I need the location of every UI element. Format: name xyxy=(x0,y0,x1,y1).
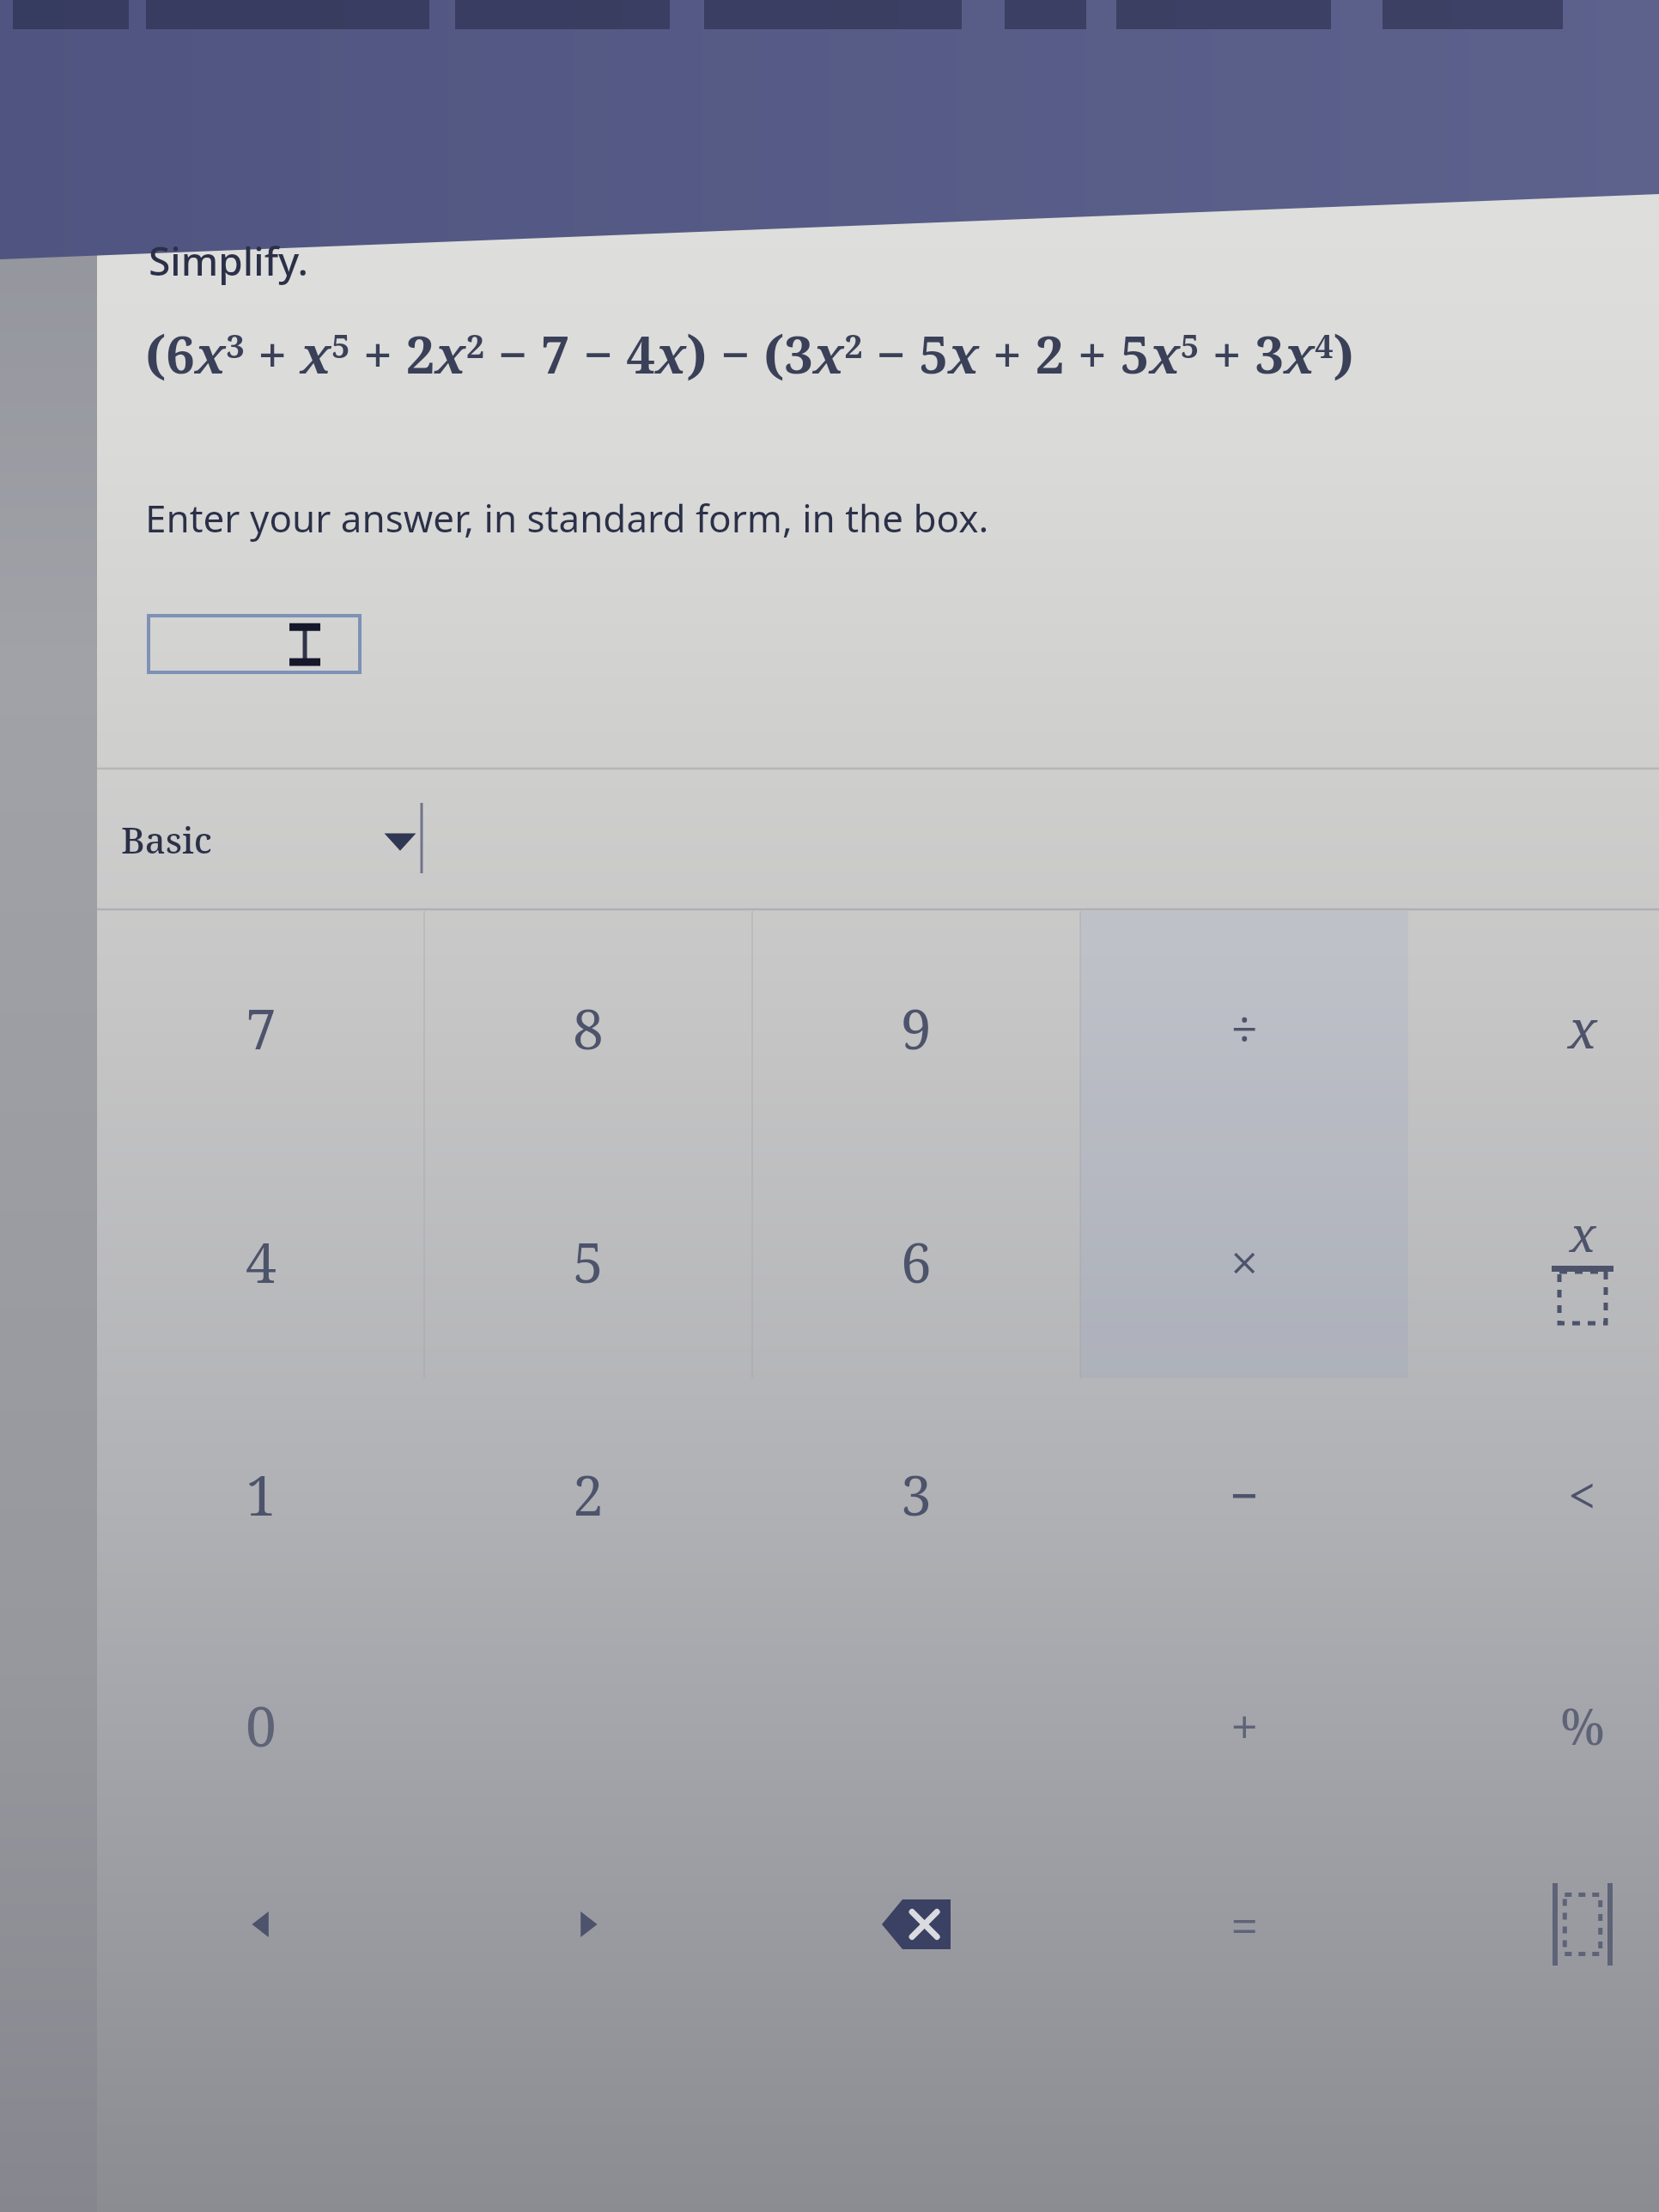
staticText: × xyxy=(1231,1228,1259,1296)
staticText: 7 xyxy=(246,991,276,1066)
button[interactable]: x xyxy=(1408,911,1659,1145)
staticText: = xyxy=(1231,1891,1259,1959)
button[interactable]: Fraction xyxy=(1408,1145,1659,1378)
staticText: (6x3 + x5 + 2x2 − 7 − 4x) − (3x2 − 5x + … xyxy=(145,319,1354,389)
button[interactable]: Move right xyxy=(424,1840,752,2008)
button[interactable]: = xyxy=(1080,1840,1408,2008)
button[interactable]: Backspace xyxy=(752,1840,1080,2008)
staticText: 9 xyxy=(901,991,932,1066)
staticText: ÷ xyxy=(1231,994,1259,1062)
staticText: Basic xyxy=(121,815,212,864)
button[interactable]: 8 xyxy=(424,911,752,1145)
button[interactable]: Basic xyxy=(97,767,1659,911)
button[interactable]: Move left xyxy=(97,1840,424,2008)
staticText: + xyxy=(1231,1692,1259,1759)
other: Choose keypad xyxy=(380,819,420,859)
button[interactable]: + xyxy=(1080,1610,1408,1840)
staticText: x xyxy=(1570,1200,1596,1266)
staticText: 5 xyxy=(573,1224,604,1299)
staticText: 1 xyxy=(246,1457,276,1532)
button[interactable]: × xyxy=(1080,1145,1408,1378)
button[interactable]: Template xyxy=(1408,1840,1659,2008)
button[interactable]: 2 xyxy=(424,1378,752,1610)
staticText: Enter your answer, in standard form, in … xyxy=(145,492,989,544)
button[interactable]: ÷ xyxy=(1080,911,1408,1145)
button[interactable]: 7 xyxy=(97,911,424,1145)
staticText: 4 xyxy=(246,1224,276,1299)
staticText: 8 xyxy=(573,991,604,1066)
staticText: 2 xyxy=(573,1457,604,1532)
staticText: Simplify. xyxy=(149,234,309,288)
staticText: < xyxy=(1568,1461,1596,1528)
button[interactable]: % xyxy=(1408,1610,1659,1840)
button[interactable]: 6 xyxy=(752,1145,1080,1378)
staticText: 3 xyxy=(901,1457,932,1532)
button[interactable]: < xyxy=(1408,1378,1659,1610)
button[interactable]: Answer input box xyxy=(149,616,360,672)
button[interactable]: 0 xyxy=(97,1610,424,1840)
button[interactable]: blank xyxy=(752,1610,1080,1840)
button[interactable]: 3 xyxy=(752,1378,1080,1610)
staticText: 6 xyxy=(901,1224,932,1299)
button[interactable]: − xyxy=(1080,1378,1408,1610)
button[interactable]: 1 xyxy=(97,1378,424,1610)
staticText: x xyxy=(1568,992,1597,1064)
staticText: % xyxy=(1560,1692,1605,1759)
button[interactable]: 5 xyxy=(424,1145,752,1378)
staticText: 0 xyxy=(246,1688,276,1763)
button[interactable]: 9 xyxy=(752,911,1080,1145)
staticText: − xyxy=(1230,1461,1259,1528)
button[interactable]: 4 xyxy=(97,1145,424,1378)
button[interactable]: blank xyxy=(424,1610,752,1840)
